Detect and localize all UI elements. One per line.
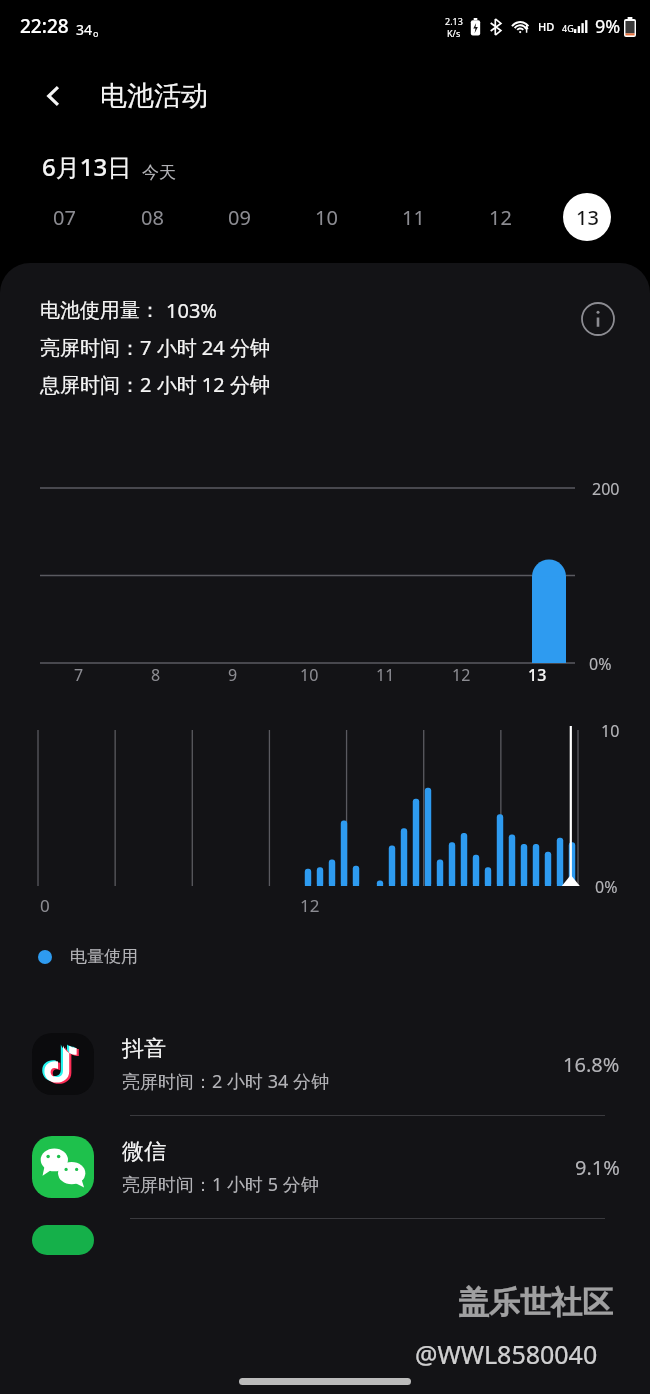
staticText: 16.8% xyxy=(563,1051,620,1078)
staticText: 12 xyxy=(452,664,471,686)
staticText: 今天 xyxy=(142,162,176,183)
staticText: 息屏时间：2 小时 12 分钟 xyxy=(40,371,270,398)
staticText: 10 xyxy=(300,664,319,686)
staticText: 13 xyxy=(528,664,547,686)
button[interactable]: 08 xyxy=(108,189,195,245)
staticText: 微信 xyxy=(122,1138,166,1166)
staticText: 8 xyxy=(151,664,161,686)
staticText: 0 xyxy=(40,894,50,917)
staticText: o xyxy=(93,27,99,39)
staticText: 2.13 xyxy=(445,15,463,27)
button[interactable]: 12 xyxy=(456,189,543,245)
staticText: 9% xyxy=(595,14,621,39)
staticText: 11 xyxy=(402,204,425,231)
staticText: 12 xyxy=(489,204,512,231)
staticText: 7 xyxy=(74,664,84,686)
staticText: 0% xyxy=(589,653,612,675)
button[interactable]: 07 xyxy=(20,189,108,245)
button[interactable]: 11 xyxy=(369,189,456,245)
staticText: 12 xyxy=(300,894,320,917)
button[interactable]: 10 xyxy=(282,189,369,245)
staticText: @WWL8580040 xyxy=(415,1337,598,1371)
button[interactable]: 09 xyxy=(195,189,282,245)
staticText: 电池活动 xyxy=(100,79,208,113)
staticText: 13 xyxy=(576,204,599,231)
staticText: 103% xyxy=(166,297,217,324)
staticText: 亮屏时间：7 小时 24 分钟 xyxy=(40,334,270,361)
staticText: 200 xyxy=(592,478,620,500)
button[interactable]: 13 xyxy=(543,189,630,245)
button[interactable]: Information xyxy=(576,297,620,341)
staticText: K/s xyxy=(447,27,461,39)
staticText: 34 xyxy=(76,20,93,39)
staticText: 22:28 xyxy=(20,13,69,39)
staticText: 9 xyxy=(228,664,238,686)
staticText: 0% xyxy=(595,876,618,898)
staticText: 08 xyxy=(141,204,164,231)
button[interactable]: 电量使用 xyxy=(38,946,138,967)
staticText: 10 xyxy=(601,720,620,742)
staticText: 9.1% xyxy=(575,1154,620,1181)
staticText: 4G xyxy=(562,22,574,34)
staticText: 电量使用 xyxy=(70,946,138,967)
button[interactable]: 微信 xyxy=(0,1116,650,1218)
staticText: 亮屏时间：1 小时 5 分钟 xyxy=(122,1172,319,1197)
staticText: 亮屏时间：2 小时 34 分钟 xyxy=(122,1069,329,1094)
staticText: 10 xyxy=(315,204,338,231)
staticText: 抖音 xyxy=(122,1035,166,1063)
staticText: HD xyxy=(538,19,555,34)
staticText: 6月13日 xyxy=(42,150,132,183)
staticText: 盖乐世社区 xyxy=(458,1283,613,1322)
button[interactable]: 抖音 xyxy=(0,1013,650,1115)
staticText: 11 xyxy=(376,664,395,686)
staticText: 07 xyxy=(53,204,76,231)
staticText: 电池使用量： xyxy=(40,298,160,323)
button[interactable]: Back xyxy=(30,72,78,120)
staticText: 09 xyxy=(228,204,251,231)
